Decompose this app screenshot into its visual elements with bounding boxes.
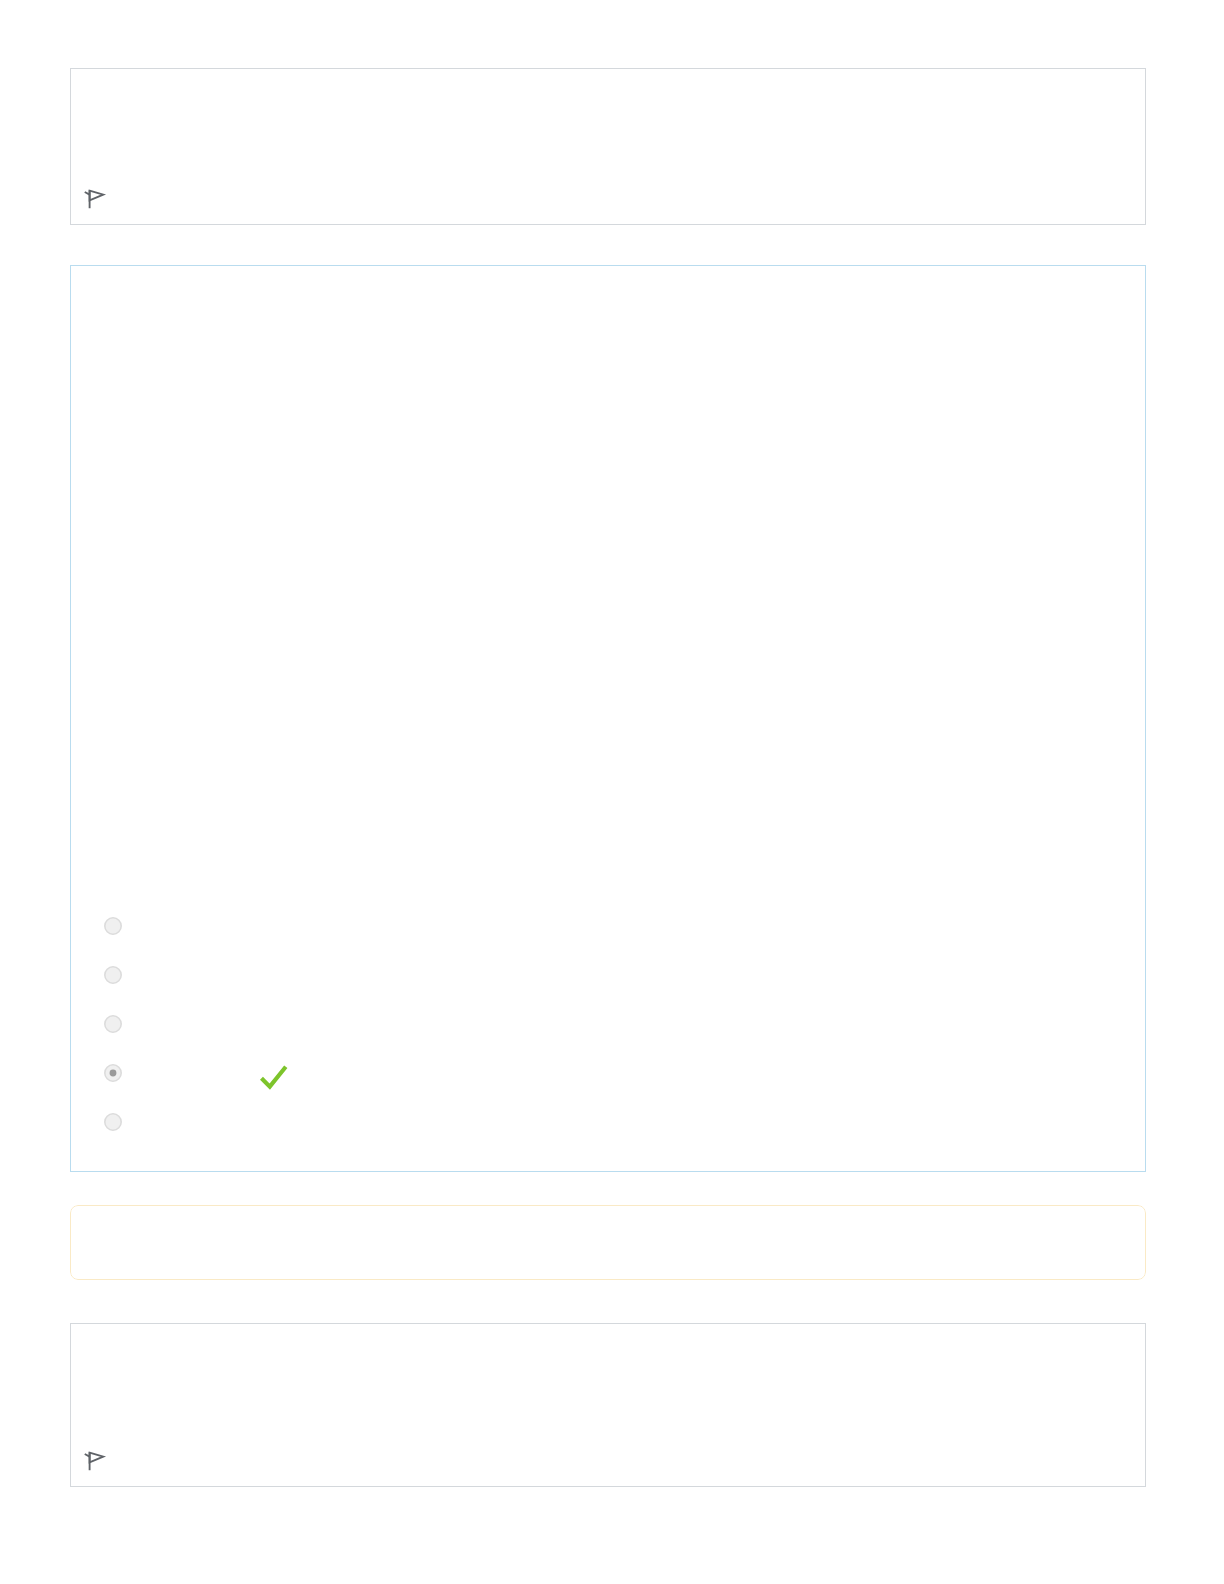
button[interactable]: Flag	[83, 1450, 105, 1472]
button[interactable]	[70, 1323, 1146, 1487]
button[interactable]: Option	[104, 1015, 122, 1033]
button[interactable]: Option	[104, 1113, 122, 1131]
button[interactable]: Flag	[83, 188, 105, 210]
other: Correct	[257, 1061, 289, 1093]
button[interactable]	[70, 265, 1146, 1172]
button[interactable]: Option	[104, 917, 122, 935]
button[interactable]	[70, 68, 1146, 225]
button[interactable]: Selected option	[104, 1064, 122, 1082]
button[interactable]: Option	[104, 966, 122, 984]
button[interactable]	[70, 1205, 1146, 1280]
